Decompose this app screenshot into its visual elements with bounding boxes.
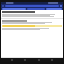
button[interactable]: Profile: [50, 58, 54, 62]
button[interactable]: [46, 8, 62, 10]
button[interactable]: Search: [23, 58, 27, 62]
button[interactable]: [2, 8, 26, 10]
button[interactable]: [5, 5, 59, 7]
button[interactable]: Library: [37, 58, 41, 62]
button[interactable]: Home: [10, 58, 14, 62]
button[interactable]: [27, 8, 45, 10]
button[interactable]: [2, 25, 62, 27]
